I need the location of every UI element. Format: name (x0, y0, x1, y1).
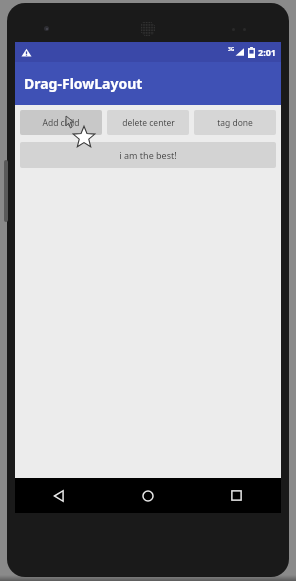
button[interactable]: Home (103, 478, 192, 513)
staticText: 2:01 (258, 46, 276, 58)
staticText: 3G (228, 46, 235, 53)
staticText: delete center (122, 117, 175, 129)
staticText: Drag-FlowLayout (24, 74, 143, 93)
staticText: i am the best! (119, 149, 177, 161)
button[interactable]: Back (15, 478, 103, 513)
button[interactable]: i am the best! (20, 142, 276, 168)
button[interactable]: Recent apps (192, 478, 281, 513)
staticText: Add child (42, 117, 80, 129)
button[interactable]: tag done (194, 110, 276, 135)
button[interactable]: Add child (20, 110, 102, 135)
staticText: tag done (217, 117, 253, 129)
button[interactable]: delete center (107, 110, 189, 135)
